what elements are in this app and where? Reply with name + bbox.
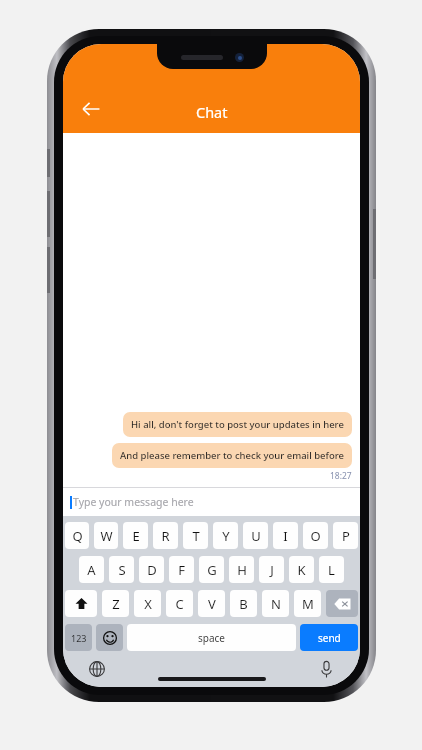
button[interactable]: N — [262, 590, 289, 617]
staticText: Type your message here — [73, 495, 194, 509]
staticText: M — [302, 595, 314, 613]
staticText: X — [144, 595, 152, 613]
button[interactable]: B — [230, 590, 257, 617]
staticText: I — [283, 527, 288, 545]
staticText: 18:27 — [330, 470, 352, 482]
button[interactable]: space — [127, 624, 296, 651]
button[interactable]: Type your message here — [63, 488, 360, 516]
button[interactable]: Change keyboard — [85, 657, 109, 681]
button[interactable]: P — [333, 522, 358, 549]
staticText: S — [118, 561, 126, 579]
button[interactable]: Backspace — [326, 590, 358, 617]
staticText: A — [87, 561, 96, 579]
button[interactable]: send — [300, 624, 358, 651]
staticText: E — [132, 527, 140, 545]
staticText: R — [161, 527, 170, 545]
staticText: And please remember to check your email … — [120, 449, 344, 462]
staticText: J — [270, 561, 274, 579]
button[interactable]: Back — [71, 89, 111, 129]
button[interactable]: L — [319, 556, 344, 583]
button[interactable]: D — [139, 556, 164, 583]
button[interactable]: X — [134, 590, 161, 617]
staticText: F — [178, 561, 185, 579]
button[interactable]: G — [199, 556, 224, 583]
button[interactable]: F — [169, 556, 194, 583]
staticText: D — [147, 561, 157, 579]
button[interactable]: M — [294, 590, 321, 617]
staticText: T — [192, 527, 200, 545]
staticText: C — [175, 595, 184, 613]
staticText: H — [237, 561, 247, 579]
button[interactable]: J — [259, 556, 284, 583]
button[interactable]: C — [166, 590, 193, 617]
staticText: Z — [112, 595, 120, 613]
button[interactable]: E — [123, 522, 148, 549]
button[interactable]: K — [289, 556, 314, 583]
button[interactable]: And please remember to check your email … — [112, 443, 352, 468]
button[interactable]: A — [79, 556, 104, 583]
button[interactable]: Y — [213, 522, 238, 549]
button[interactable]: Emoji — [96, 624, 123, 651]
button[interactable]: V — [198, 590, 225, 617]
staticText: L — [328, 561, 335, 579]
button[interactable]: I — [273, 522, 298, 549]
staticText: U — [251, 527, 261, 545]
staticText: space — [198, 631, 225, 645]
staticText: Hi all, don't forget to post your update… — [131, 418, 344, 431]
staticText: Y — [222, 527, 230, 545]
button[interactable]: U — [243, 522, 268, 549]
button[interactable]: Hi all, don't forget to post your update… — [123, 412, 352, 437]
staticText: G — [207, 561, 217, 579]
staticText: N — [271, 595, 281, 613]
button[interactable]: R — [153, 522, 178, 549]
staticText: Q — [72, 527, 83, 545]
staticText: send — [318, 631, 341, 645]
staticText: W — [100, 527, 113, 545]
staticText: P — [342, 527, 350, 545]
button[interactable]: Z — [102, 590, 129, 617]
button[interactable]: Q — [65, 522, 89, 549]
button[interactable]: 123 — [65, 624, 92, 651]
staticText: Chat — [196, 102, 228, 122]
button[interactable]: W — [94, 522, 118, 549]
button[interactable]: S — [109, 556, 134, 583]
staticText: 123 — [71, 632, 87, 644]
button[interactable]: T — [183, 522, 208, 549]
staticText: V — [208, 595, 216, 613]
button[interactable]: H — [229, 556, 254, 583]
staticText: K — [297, 561, 306, 579]
button[interactable]: Shift — [65, 590, 97, 617]
button[interactable]: O — [303, 522, 328, 549]
button[interactable]: Voice input — [314, 657, 338, 681]
staticText: B — [239, 595, 248, 613]
staticText: O — [310, 527, 321, 545]
